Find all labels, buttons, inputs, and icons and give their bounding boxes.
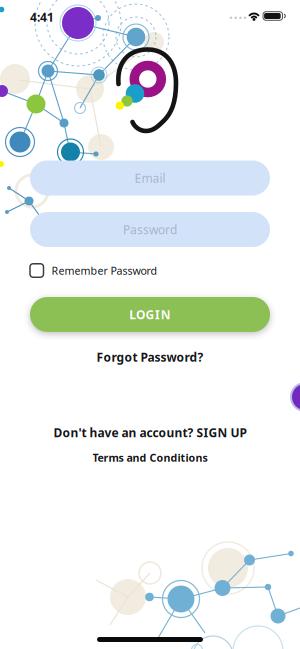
staticText: Forgot Password? xyxy=(96,349,203,365)
staticText: Terms and Conditions xyxy=(92,450,207,465)
button[interactable]: Terms and Conditions xyxy=(92,450,207,465)
button[interactable]: Remember Password xyxy=(30,263,270,278)
staticText: LOGIN xyxy=(129,306,171,322)
staticText: Remember Password xyxy=(51,263,157,278)
button[interactable]: Don't have an account? SIGN UP xyxy=(53,424,246,440)
staticText: Don't have an account? SIGN UP xyxy=(53,424,246,440)
staticText: Password xyxy=(123,221,177,237)
button[interactable]: Forgot Password? xyxy=(96,349,203,365)
staticText: 4:41 xyxy=(30,9,54,25)
staticText: Email xyxy=(134,170,165,186)
button[interactable]: LOGIN xyxy=(30,297,270,332)
